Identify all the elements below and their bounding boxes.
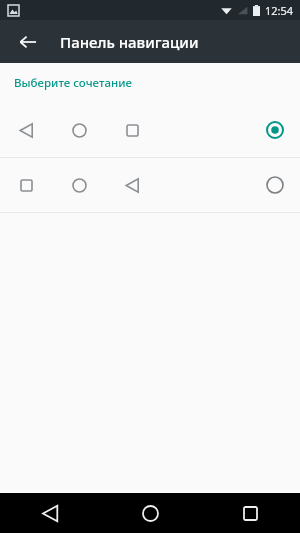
button[interactable]: Select combination (0, 158, 300, 212)
button[interactable]: Recent apps (200, 493, 300, 533)
staticText: Выберите сочетание (14, 75, 132, 91)
staticText: 12:54 (265, 3, 294, 18)
staticText: Панель навигации (60, 32, 199, 52)
button[interactable]: Selected combination (0, 103, 300, 157)
button[interactable]: Back (0, 493, 100, 533)
button[interactable]: Select combination (250, 158, 300, 212)
button[interactable]: Back (10, 24, 46, 60)
button[interactable]: Home (100, 493, 200, 533)
button[interactable]: Selected combination (250, 103, 300, 157)
